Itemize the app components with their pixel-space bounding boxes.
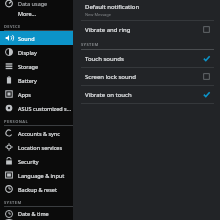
staticText: Date & time — [18, 210, 49, 217]
button[interactable]: Vibrate on touch — [73, 86, 220, 103]
staticText: Vibrate and ring — [85, 26, 131, 34]
button[interactable]: Apps — [0, 87, 73, 101]
button[interactable]: More... — [0, 7, 73, 20]
staticText: Storage — [18, 63, 39, 70]
staticText: Backup & reset — [18, 186, 57, 193]
staticText: Screen lock sound — [85, 73, 137, 81]
button[interactable]: ASUS customized setting — [0, 101, 73, 115]
staticText: Security — [18, 158, 39, 165]
button[interactable]: Backup & reset — [0, 182, 73, 196]
button[interactable]: Data usage — [0, 0, 73, 7]
staticText: Sound — [18, 35, 35, 42]
staticText: Language & input — [18, 172, 65, 179]
button[interactable]: Language & input — [0, 168, 73, 182]
staticText: Apps — [18, 91, 31, 98]
staticText: SYSTEM — [4, 200, 22, 205]
button[interactable]: Security — [0, 154, 73, 168]
staticText: Location services — [18, 144, 63, 151]
button[interactable]: Battery — [0, 73, 73, 87]
button[interactable]: Checked — [203, 55, 210, 62]
button[interactable]: Checked — [203, 91, 210, 98]
button[interactable]: Location services — [0, 140, 73, 154]
button[interactable]: Accounts & sync — [0, 126, 73, 140]
staticText: Accounts & sync — [18, 130, 60, 137]
staticText: More... — [18, 10, 37, 17]
button[interactable]: Storage — [0, 59, 73, 73]
staticText: SYSTEM — [81, 42, 99, 47]
staticText: PERSONAL — [4, 119, 29, 124]
button[interactable]: Screen lock sound — [73, 68, 220, 85]
button[interactable]: Touch sounds — [73, 50, 220, 67]
button[interactable]: Default notification — [73, 0, 220, 20]
staticText: Default notification — [85, 3, 140, 11]
staticText: DEVICE — [4, 24, 21, 29]
staticText: Touch sounds — [85, 55, 124, 63]
button[interactable]: Unchecked — [203, 26, 210, 33]
staticText: ASUS customized setting — [18, 105, 73, 112]
staticText: New Message — [85, 12, 112, 17]
staticText: Vibrate on touch — [85, 91, 132, 99]
button[interactable]: Sound — [0, 31, 73, 45]
staticText: Display — [18, 49, 37, 56]
button[interactable]: Date & time — [0, 207, 73, 220]
staticText: Data usage — [18, 0, 48, 7]
button[interactable]: Display — [0, 45, 73, 59]
staticText: Battery — [18, 77, 37, 84]
button[interactable]: Vibrate and ring — [73, 21, 220, 38]
button[interactable]: Unchecked — [203, 73, 210, 80]
